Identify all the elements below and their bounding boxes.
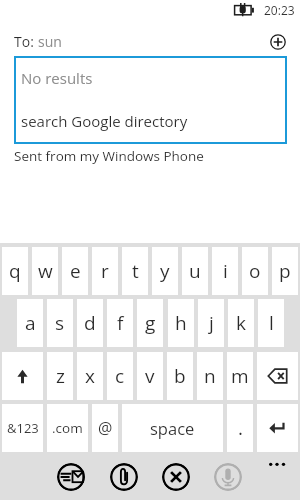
staticText: a: [25, 310, 36, 336]
staticText: f: [117, 310, 124, 336]
button[interactable]: .: [227, 404, 253, 452]
staticText: n: [204, 363, 216, 389]
button[interactable]: @: [92, 404, 118, 452]
button[interactable]: k: [228, 299, 254, 347]
button[interactable]: q: [2, 247, 28, 295]
staticText: c: [115, 363, 125, 389]
button[interactable]: r: [92, 247, 118, 295]
staticText: j: [209, 310, 214, 336]
staticText: @: [98, 417, 113, 439]
staticText: l: [269, 310, 274, 336]
button[interactable]: Enter: [257, 404, 298, 452]
button[interactable]: h: [168, 299, 194, 347]
button[interactable]: m: [227, 352, 253, 400]
staticText: No results: [21, 68, 93, 88]
staticText: .: [238, 415, 243, 441]
button[interactable]: z: [47, 352, 73, 400]
button[interactable]: More options: [265, 456, 291, 473]
staticText: t: [132, 258, 139, 284]
staticText: space: [150, 417, 195, 439]
button[interactable]: space: [122, 404, 223, 452]
staticText: k: [236, 310, 246, 336]
staticText: search Google directory: [21, 111, 188, 131]
staticText: h: [175, 310, 187, 336]
button[interactable]: i: [212, 247, 238, 295]
button[interactable]: l: [258, 299, 284, 347]
button[interactable]: [15, 57, 286, 100]
button[interactable]: y: [152, 247, 178, 295]
button[interactable]: Close: [162, 463, 190, 491]
staticText: &123: [7, 419, 39, 437]
button[interactable]: p: [272, 247, 298, 295]
button[interactable]: j: [198, 299, 224, 347]
button[interactable]: t: [122, 247, 148, 295]
button[interactable]: d: [77, 299, 103, 347]
staticText: To:: [14, 32, 34, 51]
button[interactable]: g: [137, 299, 163, 347]
staticText: o: [249, 258, 261, 284]
staticText: 20:23: [264, 2, 295, 18]
button[interactable]: &123: [2, 404, 43, 452]
button[interactable]: a: [17, 299, 43, 347]
button[interactable]: b: [167, 352, 193, 400]
staticText: e: [70, 258, 81, 284]
button[interactable]: Add recipient: [267, 31, 288, 52]
button[interactable]: Send: [57, 463, 85, 491]
staticText: y: [160, 258, 170, 284]
button[interactable]: n: [197, 352, 223, 400]
staticText: w: [38, 258, 53, 284]
button[interactable]: Shift: [2, 352, 43, 400]
staticText: p: [279, 258, 291, 284]
button[interactable]: f: [107, 299, 133, 347]
button[interactable]: Voice input: [214, 463, 242, 491]
staticText: m: [231, 363, 249, 389]
button[interactable]: Attach file: [110, 463, 138, 491]
button[interactable]: o: [242, 247, 268, 295]
staticText: .com: [52, 419, 83, 437]
staticText: q: [9, 258, 21, 284]
staticText: g: [145, 310, 156, 336]
button[interactable]: w: [32, 247, 58, 295]
staticText: d: [84, 310, 96, 336]
button[interactable]: e: [62, 247, 88, 295]
button[interactable]: [15, 99, 286, 142]
staticText: sun: [38, 32, 62, 51]
button[interactable]: Backspace: [257, 352, 298, 400]
staticText: x: [85, 363, 95, 389]
staticText: z: [56, 363, 65, 389]
button[interactable]: c: [107, 352, 133, 400]
button[interactable]: s: [47, 299, 73, 347]
button[interactable]: .com: [47, 404, 88, 452]
button[interactable]: v: [137, 352, 163, 400]
staticText: v: [145, 363, 155, 389]
button[interactable]: x: [77, 352, 103, 400]
staticText: Sent from my Windows Phone: [14, 147, 204, 165]
button[interactable]: u: [182, 247, 208, 295]
staticText: r: [101, 258, 109, 284]
staticText: b: [174, 363, 186, 389]
staticText: u: [189, 258, 201, 284]
staticText: i: [223, 258, 228, 284]
staticText: s: [55, 310, 65, 336]
